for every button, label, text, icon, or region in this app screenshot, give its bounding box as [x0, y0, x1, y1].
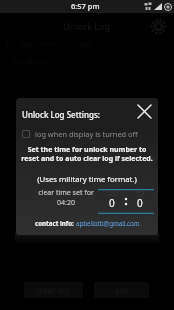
staticText: 0: [137, 196, 143, 210]
button[interactable]: log when display is turned off: [22, 128, 156, 140]
button[interactable]: Close: [134, 101, 154, 121]
staticText: 1: [110, 205, 115, 215]
staticText: 0: [109, 196, 115, 210]
button[interactable]: Settings: [149, 17, 167, 35]
button[interactable]: 23: [98, 189, 126, 214]
staticText: Unlock Log: [63, 20, 111, 32]
staticText: 6:57 pm: [71, 1, 100, 11]
staticText: (Uses military time format.): [16, 174, 158, 185]
staticText: 1: [138, 205, 143, 215]
staticText: Set the time for unlock number to reset …: [16, 145, 158, 163]
staticText: 04:20: [27, 198, 105, 208]
staticText: Unlock Log Settings:: [22, 109, 100, 120]
staticText: 59: [136, 189, 145, 199]
staticText: contact info:: [35, 219, 76, 227]
staticText: log when display is turned off: [35, 129, 138, 139]
button[interactable]: apbellotti@gmail.com: [76, 219, 140, 227]
staticText: exit: [115, 285, 129, 296]
button[interactable]: 59: [126, 189, 154, 214]
staticText: 23: [108, 189, 117, 199]
staticText: clear time set for: [27, 188, 105, 198]
